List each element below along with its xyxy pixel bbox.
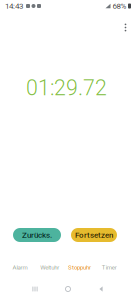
button[interactable]: More options: [116, 18, 134, 36]
staticText: 01:29.72: [26, 75, 107, 100]
button[interactable]: Back: [84, 282, 117, 296]
staticText: Zurücks.: [22, 230, 52, 240]
staticText: Alarm: [12, 264, 27, 271]
button[interactable]: Weltuhr: [35, 261, 65, 273]
button[interactable]: Home: [51, 282, 84, 296]
button[interactable]: Alarm: [5, 261, 35, 273]
button[interactable]: Fortsetzen: [71, 228, 117, 242]
button[interactable]: Timer: [94, 261, 124, 273]
staticText: Timer: [102, 264, 117, 271]
button[interactable]: Recent apps: [18, 282, 51, 296]
staticText: Weltuhr: [40, 264, 59, 271]
staticText: 14:43: [5, 1, 23, 11]
button[interactable]: Stoppuhr: [64, 261, 94, 273]
staticText: Stoppuhr: [68, 264, 91, 271]
button[interactable]: Zurücks.: [13, 228, 61, 242]
staticText: Fortsetzen: [75, 230, 113, 240]
staticText: 68%: [112, 1, 126, 11]
